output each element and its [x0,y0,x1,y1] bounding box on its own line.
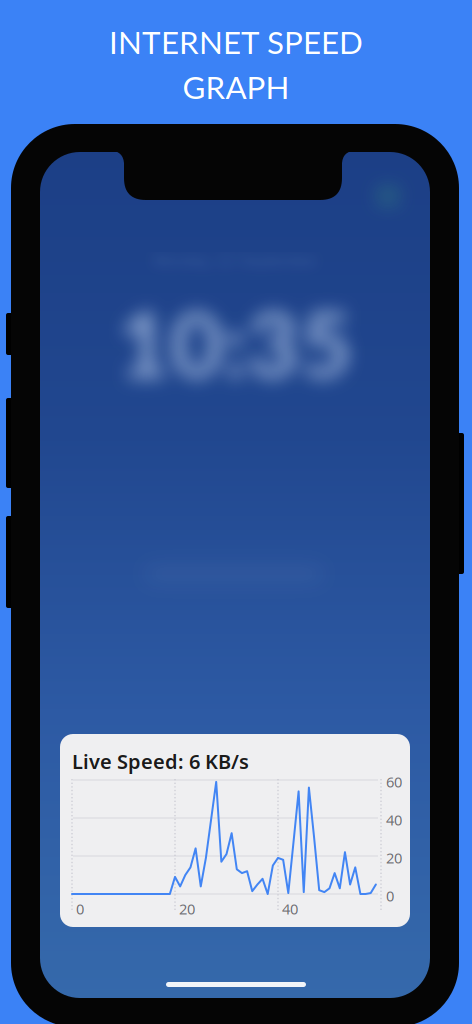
staticText: Live Speed: 6 KB/s [72,748,249,775]
staticText: GRAPH [182,68,289,106]
staticText: 20 [179,899,195,918]
staticText: 0 [386,886,394,905]
staticText: 40 [282,899,298,918]
staticText: 20 [386,848,402,867]
staticText: 0 [76,899,84,918]
staticText: INTERNET SPEED [109,23,363,61]
staticText: 40 [386,810,402,829]
staticText: 60 [386,772,402,791]
